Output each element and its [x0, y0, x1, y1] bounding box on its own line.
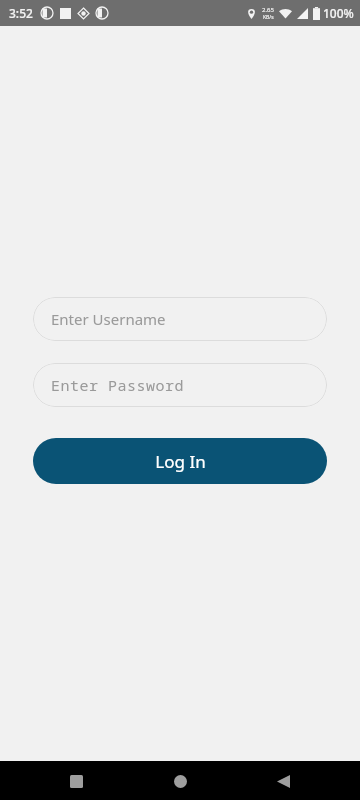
staticText: Enter Password — [51, 375, 185, 395]
staticText: KB/s — [263, 14, 274, 21]
staticText: Enter Username — [51, 309, 166, 329]
button[interactable]: Recent apps — [60, 765, 92, 797]
staticText: Log In — [155, 450, 206, 473]
button[interactable]: Log In — [33, 438, 327, 484]
staticText: 3:52 — [9, 5, 33, 21]
button[interactable]: Enter Username — [33, 297, 327, 341]
button[interactable]: Home — [164, 765, 196, 797]
staticText: 100% — [323, 5, 354, 21]
staticText: 2.65 — [262, 6, 274, 14]
button[interactable]: Enter Password — [33, 363, 327, 407]
button[interactable]: Back — [267, 765, 299, 797]
